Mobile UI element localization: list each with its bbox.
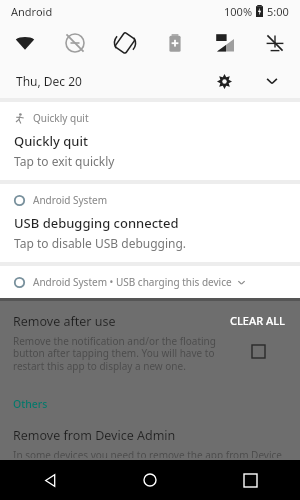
staticText: Remove after use <box>13 313 116 330</box>
button[interactable]: Do not disturb <box>50 22 100 64</box>
staticText: Quickly quit <box>14 132 88 150</box>
button[interactable]: Quickly quit <box>0 102 300 180</box>
button[interactable]: Remove after use <box>0 301 300 383</box>
staticText: Remove the notification and/or the float… <box>13 334 218 373</box>
button[interactable]: Expand <box>256 65 288 97</box>
button[interactable]: Home <box>100 460 200 500</box>
button[interactable]: Back <box>0 460 100 500</box>
staticText: Android System <box>33 193 108 207</box>
staticText: Tap to exit quickly <box>14 153 115 169</box>
button[interactable]: Mobile data LTE <box>200 22 250 64</box>
button[interactable]: Android System <box>0 184 300 262</box>
staticText: Android <box>11 4 53 19</box>
button[interactable]: Remove from Device Admin <box>0 425 300 460</box>
staticText: Thu, Dec 20 <box>16 73 82 89</box>
button[interactable]: Remove after use checkbox <box>245 338 271 364</box>
staticText: USB debugging connected <box>14 214 179 232</box>
staticText: In some devices you need to remove the a… <box>13 448 287 458</box>
staticText: Tap to disable USB debugging. <box>14 235 187 251</box>
staticText: 5:00 <box>267 4 289 19</box>
staticText: 100% <box>224 4 253 19</box>
button[interactable]: Android System • USB charging this devic… <box>0 266 300 298</box>
staticText: Others <box>13 397 48 411</box>
button[interactable]: Wi-Fi <box>0 22 50 64</box>
button[interactable]: Settings <box>208 65 240 97</box>
staticText: Remove from Device Admin <box>13 427 176 444</box>
button[interactable]: Airplane mode <box>250 22 300 64</box>
button[interactable]: CLEAR ALL <box>228 313 287 328</box>
button[interactable]: Recents <box>200 460 300 500</box>
staticText: CLEAR ALL <box>230 313 285 328</box>
button[interactable]: Auto rotate <box>100 22 150 64</box>
staticText: Quickly quit <box>33 111 89 125</box>
button[interactable]: Battery saver <box>150 22 200 64</box>
staticText: Android System • USB charging this devic… <box>33 275 232 289</box>
